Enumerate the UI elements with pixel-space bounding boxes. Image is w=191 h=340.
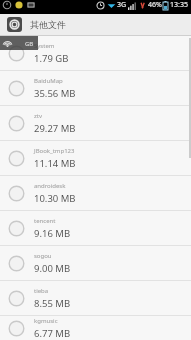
staticText: 10.30 MB xyxy=(34,192,76,205)
staticText: 13:35 xyxy=(170,0,188,10)
button[interactable]: ztv xyxy=(0,106,191,140)
button[interactable]: JBook_tmp123 xyxy=(0,141,191,175)
button[interactable]: kgmusic xyxy=(0,316,191,340)
staticText: tieba xyxy=(34,287,49,295)
staticText: 3G xyxy=(117,0,127,10)
staticText: ztv xyxy=(34,112,43,120)
staticText: 46% xyxy=(148,0,162,10)
staticText: GB xyxy=(25,40,34,48)
staticText: 其他文件 xyxy=(30,19,66,30)
staticText: JBook_tmp123 xyxy=(34,147,75,155)
staticText: 35.56 MB xyxy=(34,87,76,100)
button[interactable]: sogou xyxy=(0,246,191,280)
staticText: androidesk xyxy=(34,182,66,190)
staticText: sogou xyxy=(34,252,52,260)
staticText: 11.14 MB xyxy=(34,157,76,170)
staticText: System xyxy=(34,42,55,50)
staticText: BaiduMap xyxy=(34,77,63,85)
staticText: kgmusic xyxy=(34,317,58,325)
staticText: 8.55 MB xyxy=(34,297,71,310)
button[interactable]: tieba xyxy=(0,281,191,315)
staticText: 1.79 GB xyxy=(34,52,69,65)
button[interactable]: tencent xyxy=(0,211,191,245)
staticText: 9.00 MB xyxy=(34,262,71,275)
staticText: tencent xyxy=(34,217,56,225)
staticText: 6.77 MB xyxy=(34,327,71,340)
button[interactable]: Back xyxy=(7,17,22,32)
button[interactable]: BaiduMap xyxy=(0,71,191,105)
staticText: 9.16 MB xyxy=(34,227,71,240)
button[interactable]: androidesk xyxy=(0,176,191,210)
staticText: 29.27 MB xyxy=(34,122,76,135)
button[interactable]: System xyxy=(0,36,191,70)
